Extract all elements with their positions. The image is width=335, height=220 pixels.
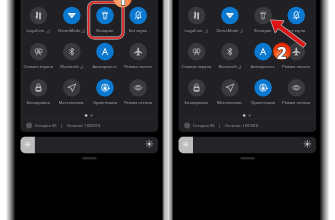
button[interactable]: Quick settings flashlight tutorial <box>0 0 335 220</box>
